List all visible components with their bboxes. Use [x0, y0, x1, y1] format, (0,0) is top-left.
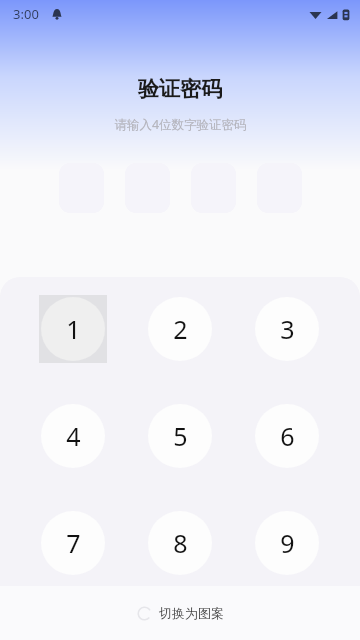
button[interactable]: 5: [146, 402, 214, 470]
staticText: 7: [66, 526, 81, 560]
staticText: 4: [66, 419, 81, 453]
button[interactable]: 2: [146, 295, 214, 363]
button[interactable]: 6: [253, 402, 321, 470]
staticText: 2: [173, 312, 188, 346]
button[interactable]: 9: [253, 509, 321, 577]
staticText: 9: [280, 526, 295, 560]
staticText: 切换为图案: [159, 605, 224, 621]
staticText: 请输入4位数字验证密码: [114, 116, 247, 133]
staticText: 验证密码: [138, 76, 222, 102]
staticText: 6: [280, 419, 295, 453]
staticText: 3: [280, 312, 295, 346]
button[interactable]: 4: [39, 402, 107, 470]
button[interactable]: 1: [39, 295, 107, 363]
button[interactable]: 切换为图案: [0, 586, 360, 640]
button[interactable]: 7: [39, 509, 107, 577]
button[interactable]: 8: [146, 509, 214, 577]
staticText: 5: [173, 419, 188, 453]
staticText: 1: [66, 312, 81, 346]
button[interactable]: 3: [253, 295, 321, 363]
staticText: 3:00: [13, 5, 39, 23]
staticText: 8: [173, 526, 188, 560]
